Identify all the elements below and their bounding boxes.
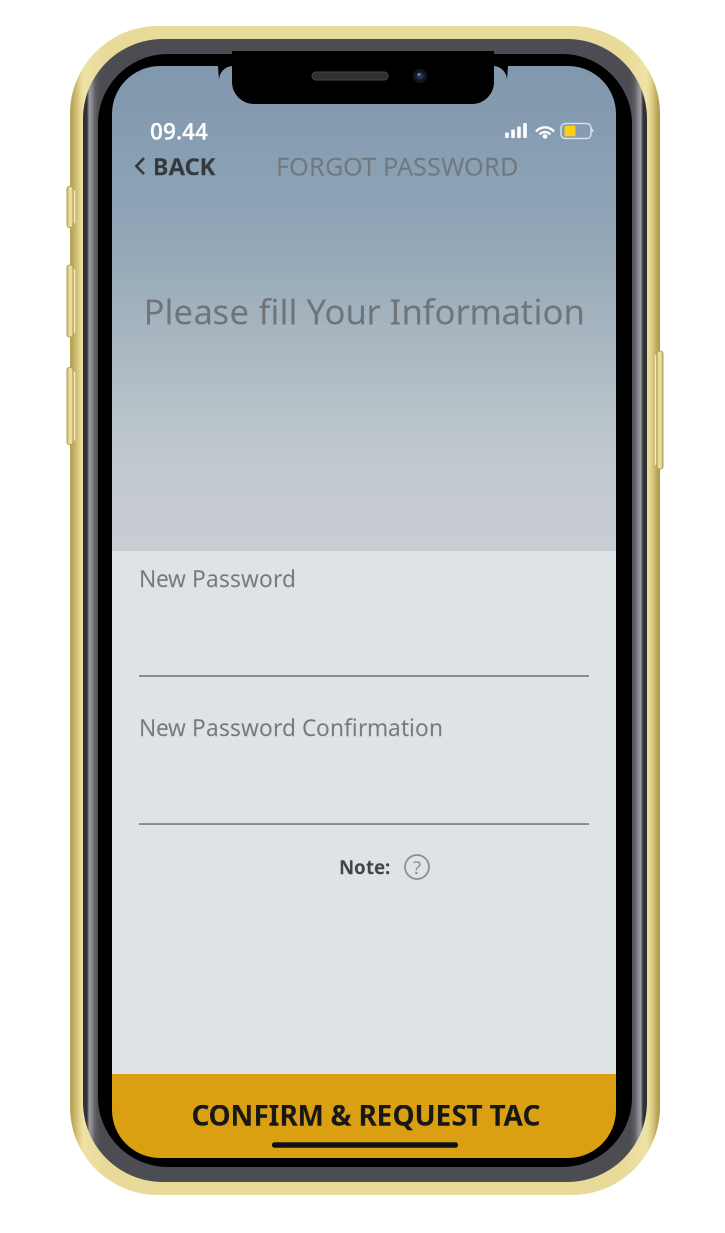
button[interactable]: CONFIRM & REQUEST TAC: [112, 1074, 616, 1158]
staticText: BACK: [152, 150, 215, 182]
staticText: FORGOT PASSWORD: [276, 149, 518, 183]
button[interactable]: BACK: [126, 141, 223, 191]
staticText: ?: [413, 855, 421, 879]
staticText: New Password Confirmation: [139, 712, 443, 742]
staticText: Please fill Your Information: [143, 288, 584, 334]
staticText: 09.44: [150, 116, 208, 146]
button[interactable]: Note help: [403, 853, 431, 881]
staticText: CONFIRM & REQUEST TAC: [191, 1096, 540, 1134]
staticText: New Password: [139, 563, 296, 593]
staticText: Note:: [339, 855, 390, 879]
